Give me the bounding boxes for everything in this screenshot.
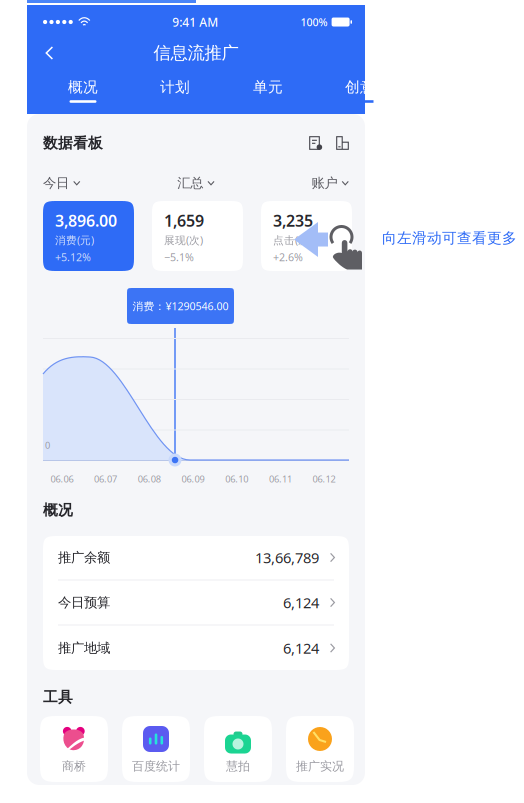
staticText: 推广地域: [58, 640, 110, 656]
staticText: 06.12: [313, 473, 336, 485]
button[interactable]: 创意: [340, 79, 380, 103]
staticText: 6,124: [283, 638, 319, 658]
staticText: 创意: [345, 78, 375, 96]
staticText: 展现(次): [164, 233, 203, 247]
staticText: 概况: [43, 501, 73, 519]
button[interactable]: 推广余额: [43, 535, 349, 580]
button[interactable]: 概况: [63, 79, 103, 103]
staticText: 计划: [160, 78, 190, 96]
button[interactable]: 返回: [27, 37, 70, 69]
staticText: 06.09: [181, 473, 204, 485]
staticText: 1,659: [164, 210, 204, 231]
staticText: 单元: [253, 78, 283, 96]
button[interactable]: 慧拍: [204, 716, 272, 782]
staticText: 工具: [43, 688, 73, 706]
button[interactable]: 自定义指标: [308, 132, 322, 154]
button[interactable]: 账户: [247, 175, 349, 191]
button[interactable]: 今日: [43, 175, 145, 191]
staticText: 消费：¥1290546.00: [132, 299, 228, 313]
button[interactable]: 推广实况: [286, 716, 354, 782]
button[interactable]: 切换视图: [322, 132, 349, 154]
staticText: 概况: [68, 78, 98, 96]
staticText: 3,896.00: [55, 210, 117, 231]
staticText: 推广实况: [296, 759, 344, 774]
staticText: 今日预算: [58, 594, 110, 611]
button[interactable]: 单元: [248, 79, 288, 103]
staticText: 6,124: [283, 593, 319, 612]
staticText: −5.1%: [164, 250, 194, 264]
button[interactable]: 商桥: [40, 716, 108, 782]
staticText: 向左滑动可查看更多: [382, 229, 517, 247]
button[interactable]: 计划: [155, 79, 195, 103]
staticText: +2.6%: [273, 250, 303, 264]
staticText: 06.06: [50, 473, 73, 485]
staticText: 今日: [43, 175, 69, 191]
staticText: 商桥: [62, 759, 86, 774]
staticText: 账户: [311, 175, 337, 191]
staticText: 3,235: [273, 210, 313, 231]
staticText: 13,66,789: [255, 548, 319, 567]
staticText: 100%: [301, 15, 328, 29]
staticText: 数据看板: [43, 134, 103, 152]
staticText: 06.07: [94, 473, 117, 485]
staticText: 消费(元): [55, 233, 94, 247]
button[interactable]: 汇总: [145, 175, 247, 191]
staticText: 0: [45, 439, 50, 451]
button[interactable]: 今日预算: [43, 580, 349, 625]
staticText: 信息流推广: [153, 42, 238, 64]
staticText: 06.08: [138, 473, 161, 485]
staticText: 汇总: [177, 175, 203, 191]
staticText: 推广余额: [58, 549, 110, 566]
staticText: 点击(次): [273, 233, 312, 247]
staticText: 06.10: [225, 473, 248, 485]
staticText: 06.11: [269, 473, 292, 485]
staticText: +5.12%: [55, 250, 91, 264]
button[interactable]: 推广地域: [43, 625, 349, 670]
staticText: 慧拍: [226, 759, 250, 774]
staticText: 百度统计: [132, 759, 180, 774]
button[interactable]: 百度统计: [122, 716, 190, 782]
staticText: 9:41 AM: [172, 14, 218, 30]
